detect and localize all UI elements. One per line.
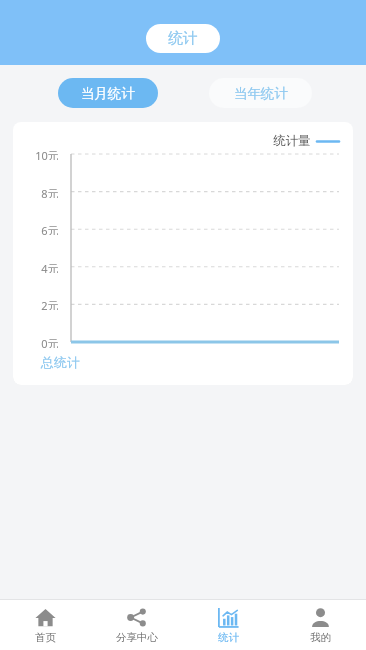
staticText: 我的 [310,631,331,644]
button[interactable]: 分享中心 [91,600,182,650]
button[interactable]: 当年统计 [209,78,312,108]
button[interactable]: 首页 [0,600,91,650]
staticText: 2元 [41,298,59,310]
staticText: 统计 [168,29,198,48]
staticText: 0元 [41,336,59,348]
staticText: 统计量 [273,133,311,149]
staticText: 10元 [35,148,59,160]
button[interactable]: 统计 [146,24,220,53]
staticText: 6元 [41,223,59,235]
staticText: 总统计 [41,354,80,370]
button[interactable]: 当月统计 [58,78,158,108]
staticText: 4元 [41,261,59,273]
staticText: 8元 [41,186,59,198]
button[interactable]: 统计 [182,600,274,650]
staticText: 当年统计 [234,85,288,102]
button[interactable]: 我的 [274,600,366,650]
staticText: 统计 [218,631,239,644]
staticText: 首页 [35,631,56,644]
staticText: 分享中心 [116,631,158,644]
staticText: 当月统计 [81,85,135,102]
